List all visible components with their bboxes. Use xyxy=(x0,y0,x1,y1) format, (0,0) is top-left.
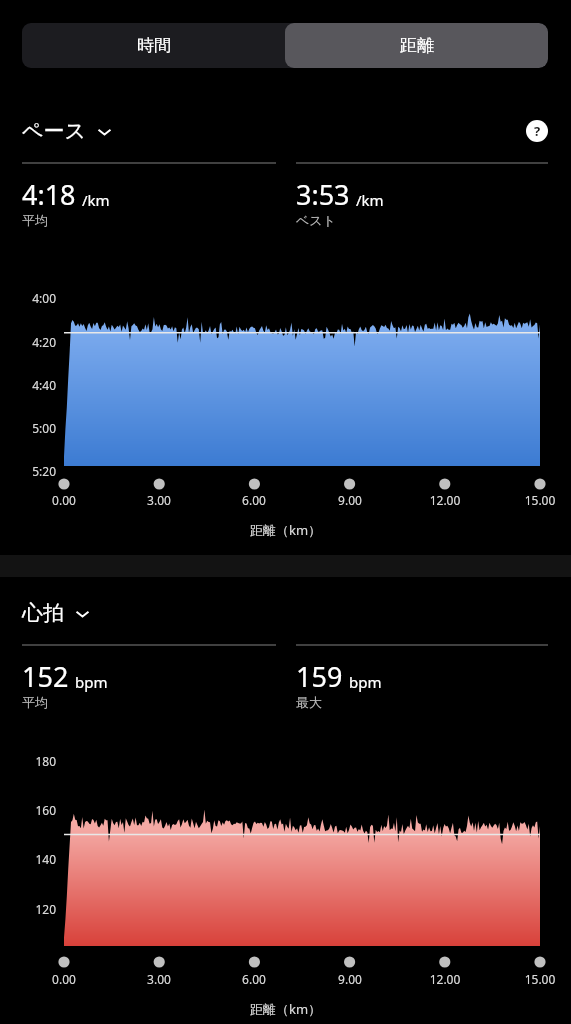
staticText: bpm xyxy=(75,672,108,692)
staticText: 15.00 xyxy=(510,971,570,987)
staticText: 4:40 xyxy=(0,377,56,393)
staticText: 9.00 xyxy=(320,492,380,508)
staticText: 3.00 xyxy=(129,492,189,508)
staticText: 4:20 xyxy=(0,334,56,350)
staticText: 12.00 xyxy=(415,971,475,987)
button[interactable]: ヘルプ xyxy=(526,120,548,142)
staticText: 5:20 xyxy=(0,463,56,479)
staticText: 距離（km） xyxy=(250,521,322,539)
staticText: 5:00 xyxy=(0,420,56,436)
staticText: 12.00 xyxy=(415,492,475,508)
staticText: 152 xyxy=(22,658,69,695)
button[interactable]: 時間 xyxy=(22,23,285,68)
staticText: ベスト xyxy=(296,212,336,228)
staticText: bpm xyxy=(349,672,382,692)
staticText: 心拍 xyxy=(22,600,64,626)
button[interactable]: ペース xyxy=(22,115,112,147)
staticText: 0.00 xyxy=(34,971,94,987)
staticText: 4:00 xyxy=(0,290,56,306)
staticText: 6.00 xyxy=(224,492,284,508)
staticText: /km xyxy=(356,190,384,210)
staticText: 最大 xyxy=(296,694,322,710)
staticText: 9.00 xyxy=(320,971,380,987)
staticText: 3.00 xyxy=(129,971,189,987)
staticText: 140 xyxy=(0,851,56,867)
staticText: /km xyxy=(82,190,110,210)
staticText: 平均 xyxy=(22,694,48,710)
staticText: 時間 xyxy=(137,35,171,56)
staticText: ペース xyxy=(22,118,86,144)
staticText: 159 xyxy=(296,658,343,695)
staticText: 180 xyxy=(0,753,56,769)
staticText: 0.00 xyxy=(34,492,94,508)
staticText: 距離（km） xyxy=(250,1000,322,1018)
staticText: 距離 xyxy=(400,35,434,56)
staticText: 120 xyxy=(0,901,56,917)
staticText: 4:18 xyxy=(22,176,76,213)
staticText: 6.00 xyxy=(224,971,284,987)
staticText: 160 xyxy=(0,802,56,818)
button[interactable]: 心拍 xyxy=(22,597,90,629)
staticText: 3:53 xyxy=(296,176,350,213)
button[interactable]: 距離 xyxy=(285,23,548,68)
staticText: ? xyxy=(534,122,541,140)
staticText: 15.00 xyxy=(510,492,570,508)
staticText: 平均 xyxy=(22,212,48,228)
